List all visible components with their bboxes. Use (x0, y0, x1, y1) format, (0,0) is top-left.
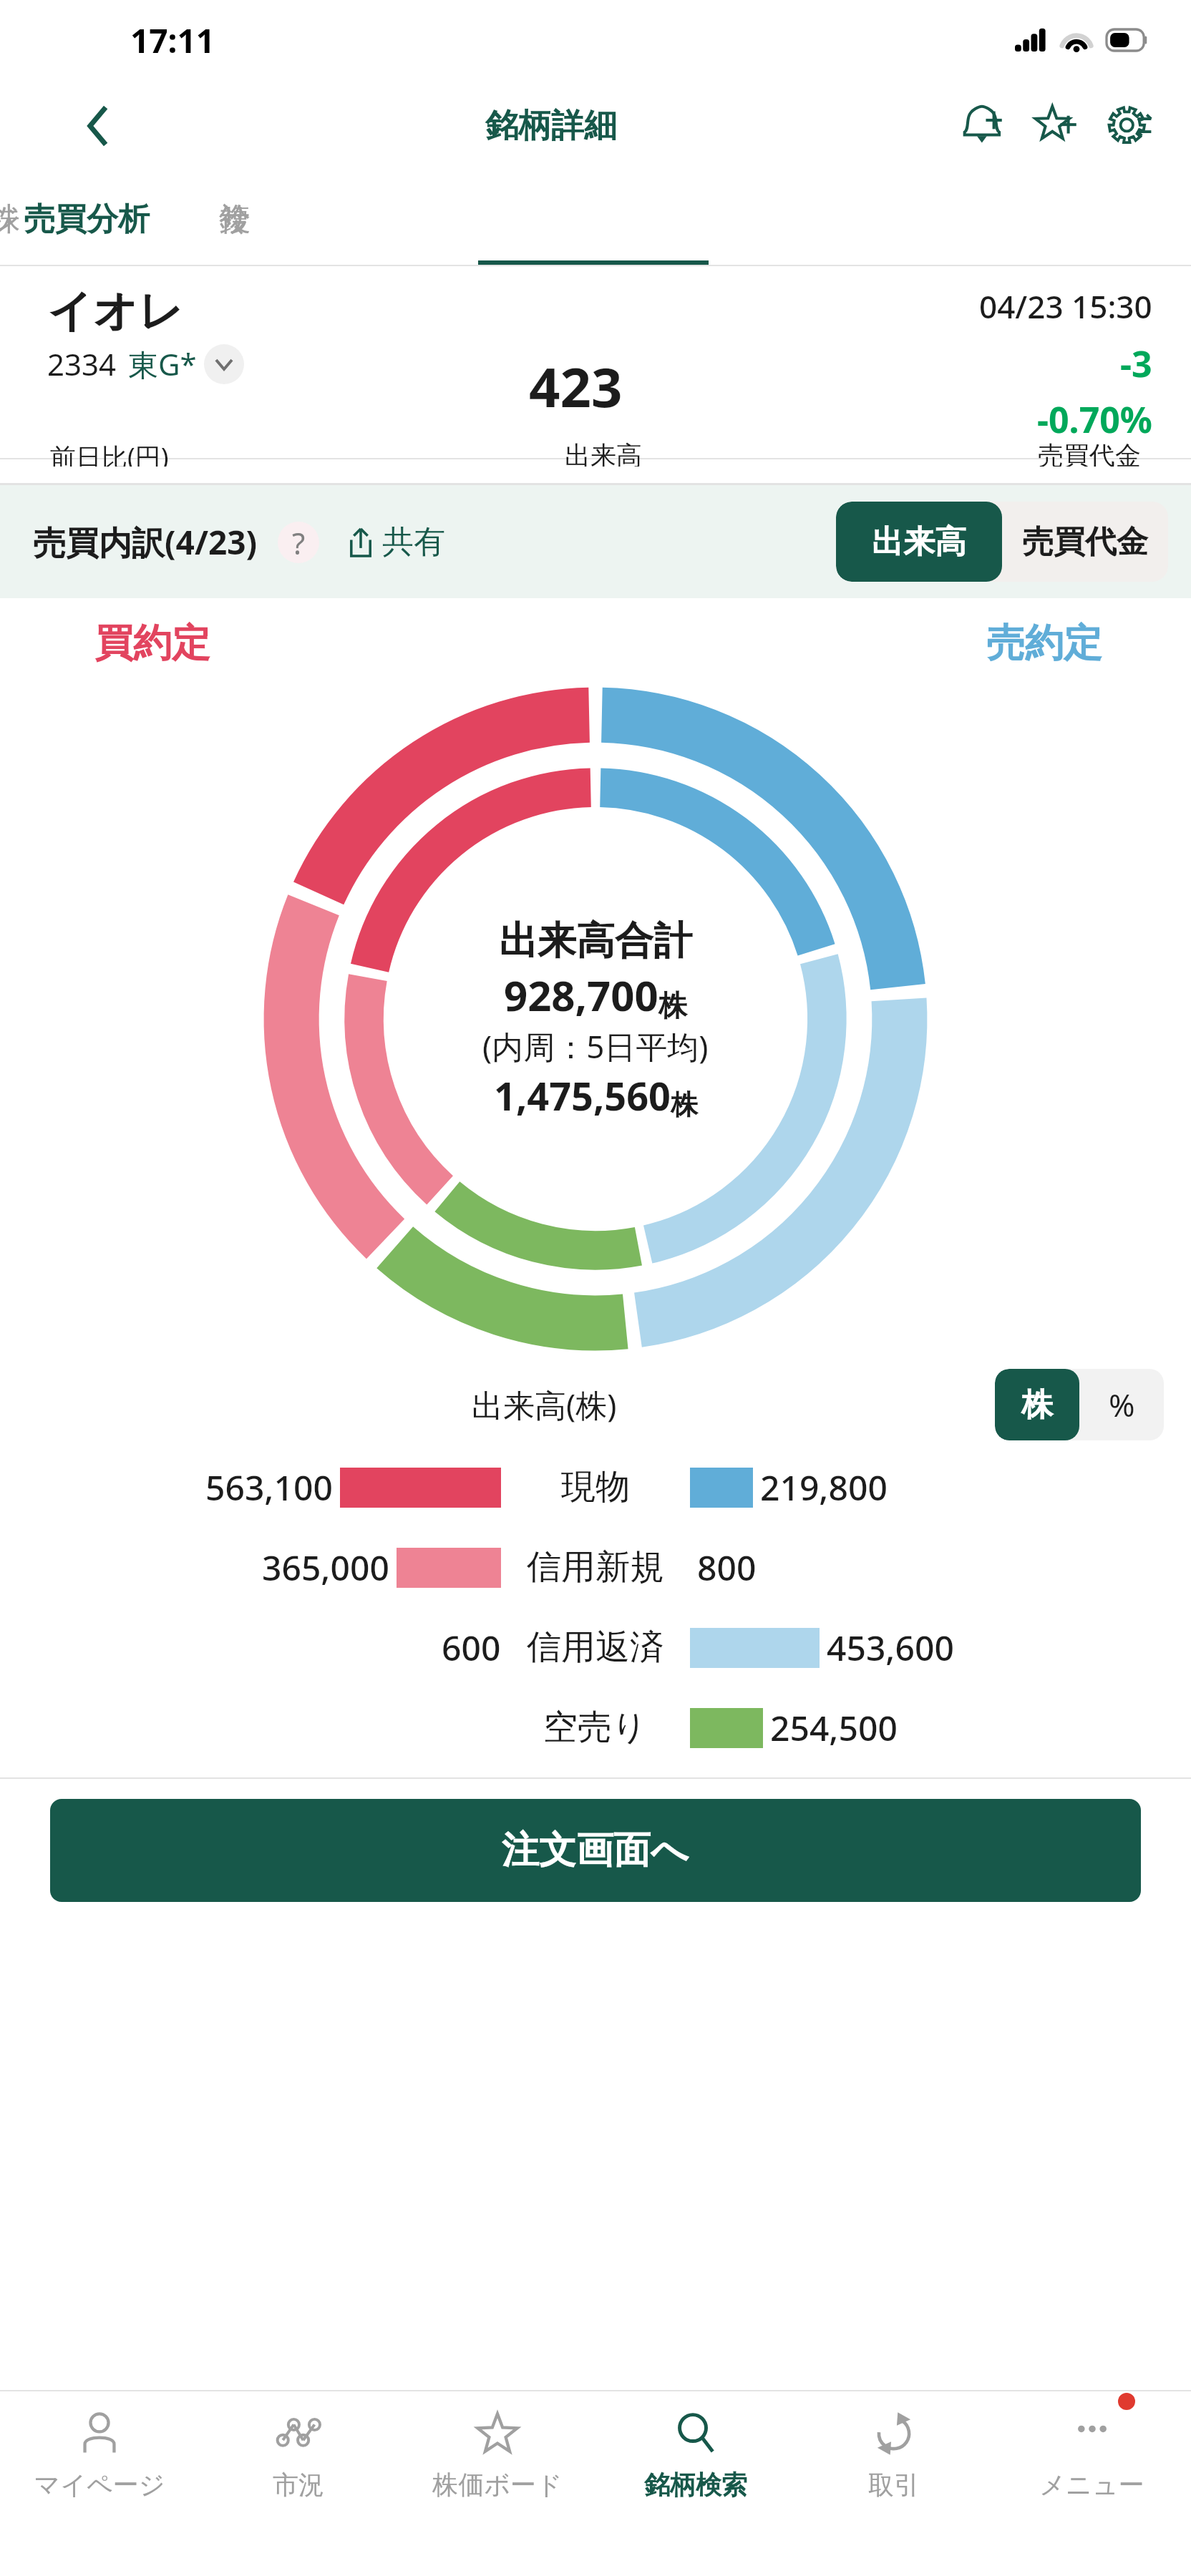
staticText: 銘柄詳細 (485, 105, 617, 147)
staticText: 東G* (128, 343, 197, 384)
staticText: 453,600 (827, 1624, 954, 1671)
button[interactable]: マイページ (0, 2391, 199, 2576)
staticText: メニュー (1039, 2469, 1144, 2501)
button[interactable]: % (1079, 1369, 1164, 1440)
staticText: 株 (658, 987, 687, 1023)
staticText: 共有 (382, 522, 445, 562)
button[interactable]: 市況 (199, 2391, 398, 2576)
staticText: 売買代金 (1022, 522, 1148, 562)
button[interactable]: 売買代金 (1002, 502, 1168, 582)
staticText: 信用新規 (527, 1546, 664, 1589)
staticText: (内周：5日平均) (482, 1025, 709, 1068)
staticText: 出来高合計 (499, 917, 692, 965)
button[interactable]: メニュー (993, 2391, 1191, 2576)
button[interactable]: Market info (204, 344, 244, 384)
staticText: 17:11 (130, 18, 215, 63)
staticText: 買約定 (94, 619, 210, 668)
staticText: 銘柄検索 (644, 2469, 747, 2501)
button[interactable]: Back (66, 94, 130, 158)
button[interactable]: Add price alert (943, 89, 1018, 163)
staticText: 売買代金 (1038, 439, 1141, 467)
staticText: 株 (1021, 1385, 1053, 1425)
staticText: 219,800 (760, 1464, 888, 1511)
staticText: 出来高(株) (472, 1383, 617, 1426)
staticText: 563,100 (205, 1464, 333, 1511)
staticText: 1,475,560 (494, 1069, 671, 1122)
staticText: 365,000 (262, 1544, 389, 1591)
staticText: 売約定 (986, 619, 1102, 668)
staticText: 市況 (273, 2469, 324, 2501)
button[interactable]: 株 (995, 1369, 1079, 1440)
button[interactable]: 取引 (794, 2391, 993, 2576)
staticText: -3 (1120, 339, 1152, 388)
button[interactable]: Help (278, 522, 319, 563)
staticText: 2334 (47, 343, 117, 384)
staticText: -0.70% (1037, 395, 1152, 444)
staticText: 売買内訳(4/23) (33, 519, 258, 565)
staticText: 600 (442, 1624, 501, 1671)
staticText: 出来高 (872, 522, 966, 562)
staticText: 売買分析 (24, 200, 150, 239)
staticText: 前日比(円) (50, 439, 169, 467)
staticText: 928,700 (504, 967, 658, 1023)
staticText: 現物 (561, 1465, 630, 1508)
button[interactable]: 株価ボード (398, 2391, 596, 2576)
button[interactable]: Add to watchlist (1018, 89, 1092, 163)
button[interactable]: 共有 (341, 518, 449, 566)
button[interactable]: Settings (1092, 89, 1167, 163)
button[interactable]: 売買分析 (0, 172, 202, 266)
staticText: % (1109, 1383, 1135, 1426)
staticText: 423 (529, 349, 623, 424)
staticText: 株価ボード (432, 2469, 563, 2501)
staticText: 空売り (543, 1706, 648, 1749)
staticText: 04/23 15:30 (979, 285, 1152, 328)
staticText: 254,500 (770, 1704, 898, 1751)
staticText: 出来高 (565, 439, 642, 467)
button[interactable]: 出来高 (836, 502, 1002, 582)
staticText: マイページ (34, 2469, 165, 2501)
staticText: イオレ (47, 283, 184, 339)
staticText: 株 (671, 1088, 698, 1122)
staticText: 信用返済 (527, 1626, 664, 1669)
staticText: 注文画面へ (502, 1827, 689, 1874)
button[interactable]: 注文画面へ (50, 1799, 1141, 1902)
staticText: 800 (697, 1544, 757, 1591)
staticText: 取引 (868, 2469, 920, 2501)
button[interactable]: 銘柄検索 (596, 2391, 794, 2576)
staticText: ? (292, 522, 306, 563)
